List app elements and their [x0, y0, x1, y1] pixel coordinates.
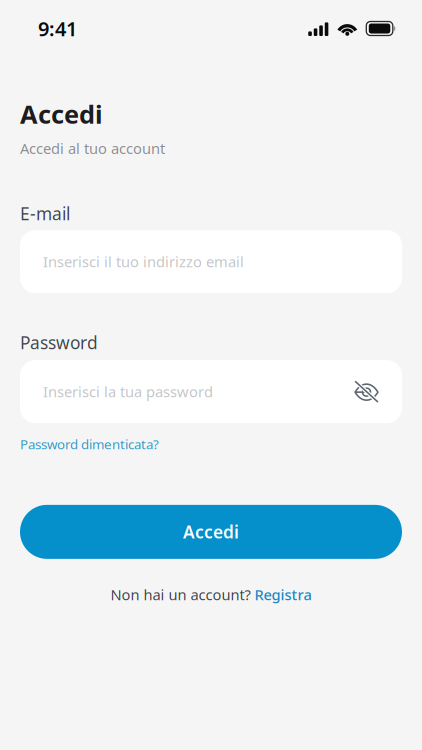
- staticText: 9:41: [38, 15, 77, 42]
- staticText: Inserisci il tuo indirizzo email: [43, 252, 244, 271]
- staticText: Accedi al tuo account: [20, 139, 165, 158]
- staticText: Password: [20, 331, 98, 354]
- staticText: Registra: [254, 585, 311, 604]
- staticText: Non hai un account?: [110, 585, 250, 604]
- button[interactable]: Registra: [254, 585, 311, 604]
- button[interactable]: Password dimenticata?: [20, 433, 159, 455]
- staticText: E-mail: [20, 202, 70, 225]
- staticText: Accedi: [20, 97, 103, 131]
- staticText: Inserisci la tua password: [43, 382, 213, 401]
- button[interactable]: Mostra password: [354, 380, 379, 403]
- staticText: Password dimenticata?: [20, 435, 159, 453]
- button[interactable]: Accedi: [20, 505, 402, 559]
- staticText: Accedi: [183, 520, 239, 543]
